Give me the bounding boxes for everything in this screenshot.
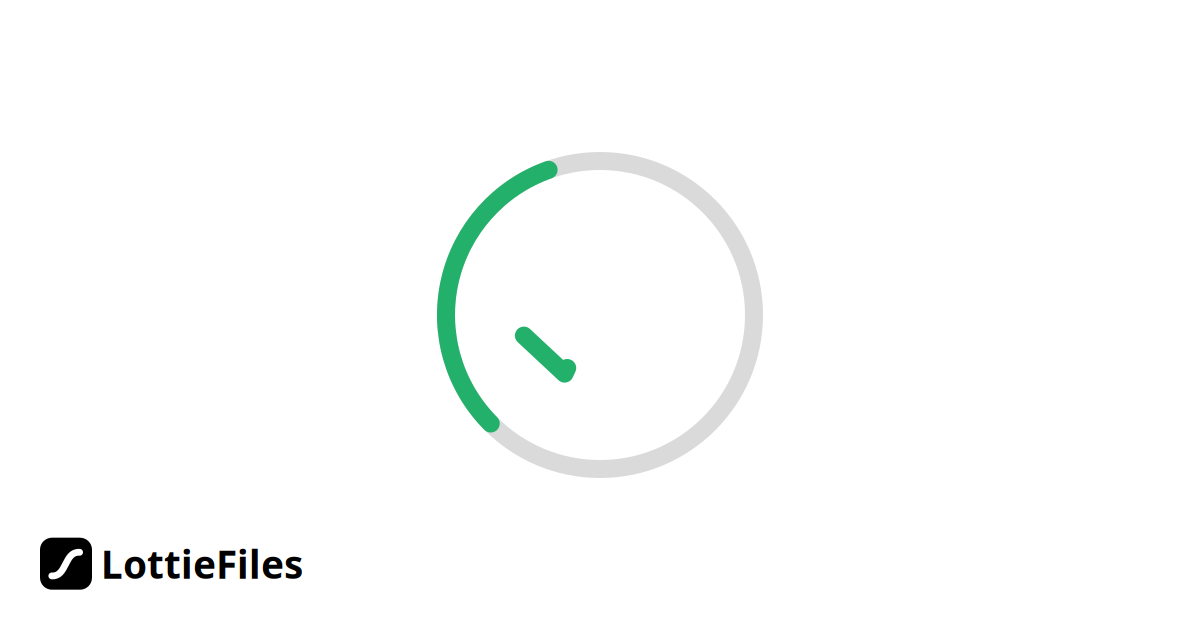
button[interactable]: LottieFiles: [40, 538, 303, 590]
staticText: LottieFiles: [101, 538, 303, 589]
